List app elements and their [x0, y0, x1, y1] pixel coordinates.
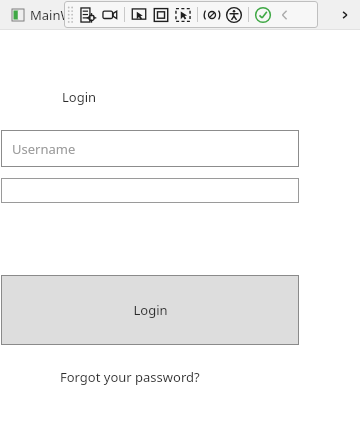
staticText: Forgot your password?: [60, 368, 200, 386]
button[interactable]: Expand: [334, 4, 356, 26]
button[interactable]: Record: [99, 2, 121, 27]
staticText: Login: [62, 88, 97, 106]
button[interactable]: Capture region: [172, 2, 194, 27]
button[interactable]: Select component: [128, 2, 150, 27]
staticText: MainW: [30, 6, 73, 24]
button[interactable]: [1, 178, 299, 203]
staticText: Username: [12, 140, 76, 158]
button[interactable]: Bounds: [150, 2, 172, 27]
staticText: Login: [133, 301, 168, 319]
button[interactable]: Accessibility: [223, 2, 245, 27]
button[interactable]: Checks passed: [252, 2, 274, 27]
button[interactable]: Login: [1, 275, 299, 345]
button[interactable]: Inspect: [77, 2, 99, 27]
button[interactable]: Forgot your password?: [60, 368, 200, 386]
button[interactable]: Collapse: [274, 2, 296, 27]
button[interactable]: Username: [1, 130, 299, 167]
button[interactable]: Suppress: [201, 2, 223, 27]
